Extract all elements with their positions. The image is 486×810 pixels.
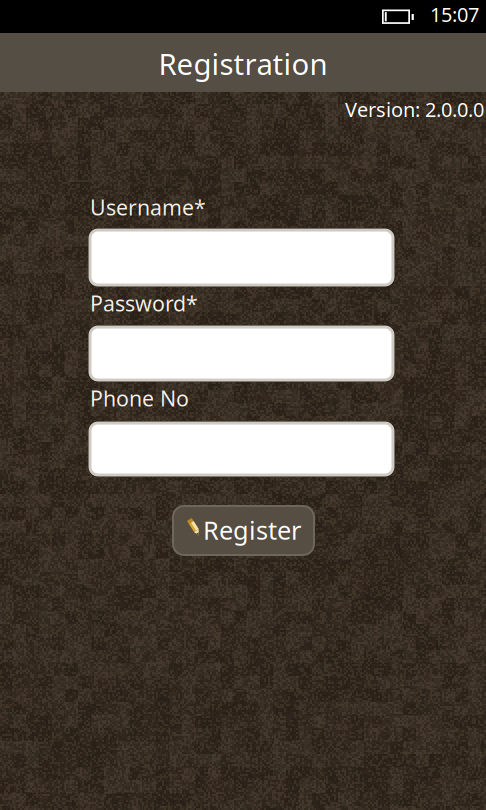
staticText: 15:07 bbox=[430, 1, 479, 28]
button[interactable]: Password bbox=[91, 328, 394, 381]
staticText: Version: 2.0.0.0 bbox=[345, 96, 484, 123]
staticText: Username* bbox=[90, 193, 206, 221]
button[interactable]: Register bbox=[173, 506, 314, 555]
staticText: Register bbox=[203, 513, 301, 547]
staticText: Password* bbox=[90, 289, 198, 317]
staticText: Phone No bbox=[90, 384, 189, 412]
staticText: Registration bbox=[158, 44, 327, 83]
button[interactable]: Phone No bbox=[91, 424, 394, 476]
button[interactable]: Username bbox=[91, 231, 394, 286]
